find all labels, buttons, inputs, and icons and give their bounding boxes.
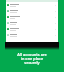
button[interactable]: Account icon xyxy=(6,26,58,32)
button[interactable]: Account icon xyxy=(6,20,58,26)
other: Account icon xyxy=(7,10,9,12)
button[interactable]: Account icon xyxy=(6,8,58,14)
button[interactable]: Account icon xyxy=(6,2,58,8)
button[interactable]: Account icon xyxy=(6,14,58,20)
staticText: All accounts are in one place securely xyxy=(17,52,47,65)
button[interactable]: Account icon xyxy=(6,32,58,38)
other: Account icon xyxy=(7,16,9,18)
other: Account icon xyxy=(7,22,9,24)
other: Account icon xyxy=(7,28,9,30)
other: Account icon xyxy=(7,34,9,36)
other: Account icon xyxy=(7,4,9,6)
